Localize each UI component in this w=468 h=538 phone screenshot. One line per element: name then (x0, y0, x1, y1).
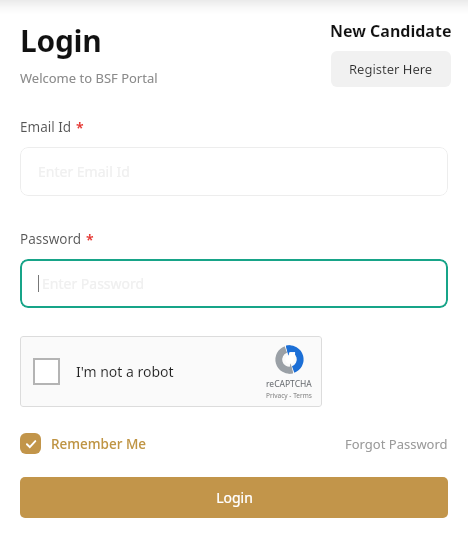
staticText: Login (216, 488, 253, 507)
staticText: * (76, 118, 84, 137)
staticText: * (86, 230, 94, 249)
staticText: Password (20, 230, 82, 248)
button[interactable]: Enter Email Id (20, 147, 448, 196)
staticText: I'm not a robot (76, 362, 174, 381)
staticText: Remember Me (51, 435, 147, 453)
staticText: Register Here (349, 60, 433, 78)
button[interactable]: Enter Password (20, 259, 448, 308)
staticText: Welcome to BSF Portal (20, 69, 158, 87)
staticText: reCAPTCHA (266, 378, 312, 390)
staticText: Enter Password (42, 274, 145, 293)
staticText: Privacy - Terms (266, 391, 312, 400)
staticText: New Candidate (330, 20, 452, 42)
other: I'm not a robot checkbox (33, 358, 60, 385)
staticText: Forgot Password (345, 435, 448, 453)
button[interactable]: Register Here (331, 51, 451, 87)
button[interactable]: Login (20, 477, 448, 518)
button[interactable]: Forgot Password (345, 431, 448, 457)
staticText: Email Id (20, 118, 72, 136)
button[interactable]: Remember Me (20, 429, 147, 458)
staticText: Login (20, 20, 102, 61)
staticText: Enter Email Id (38, 162, 130, 181)
button[interactable]: I'm not a robot checkbox (20, 336, 322, 407)
